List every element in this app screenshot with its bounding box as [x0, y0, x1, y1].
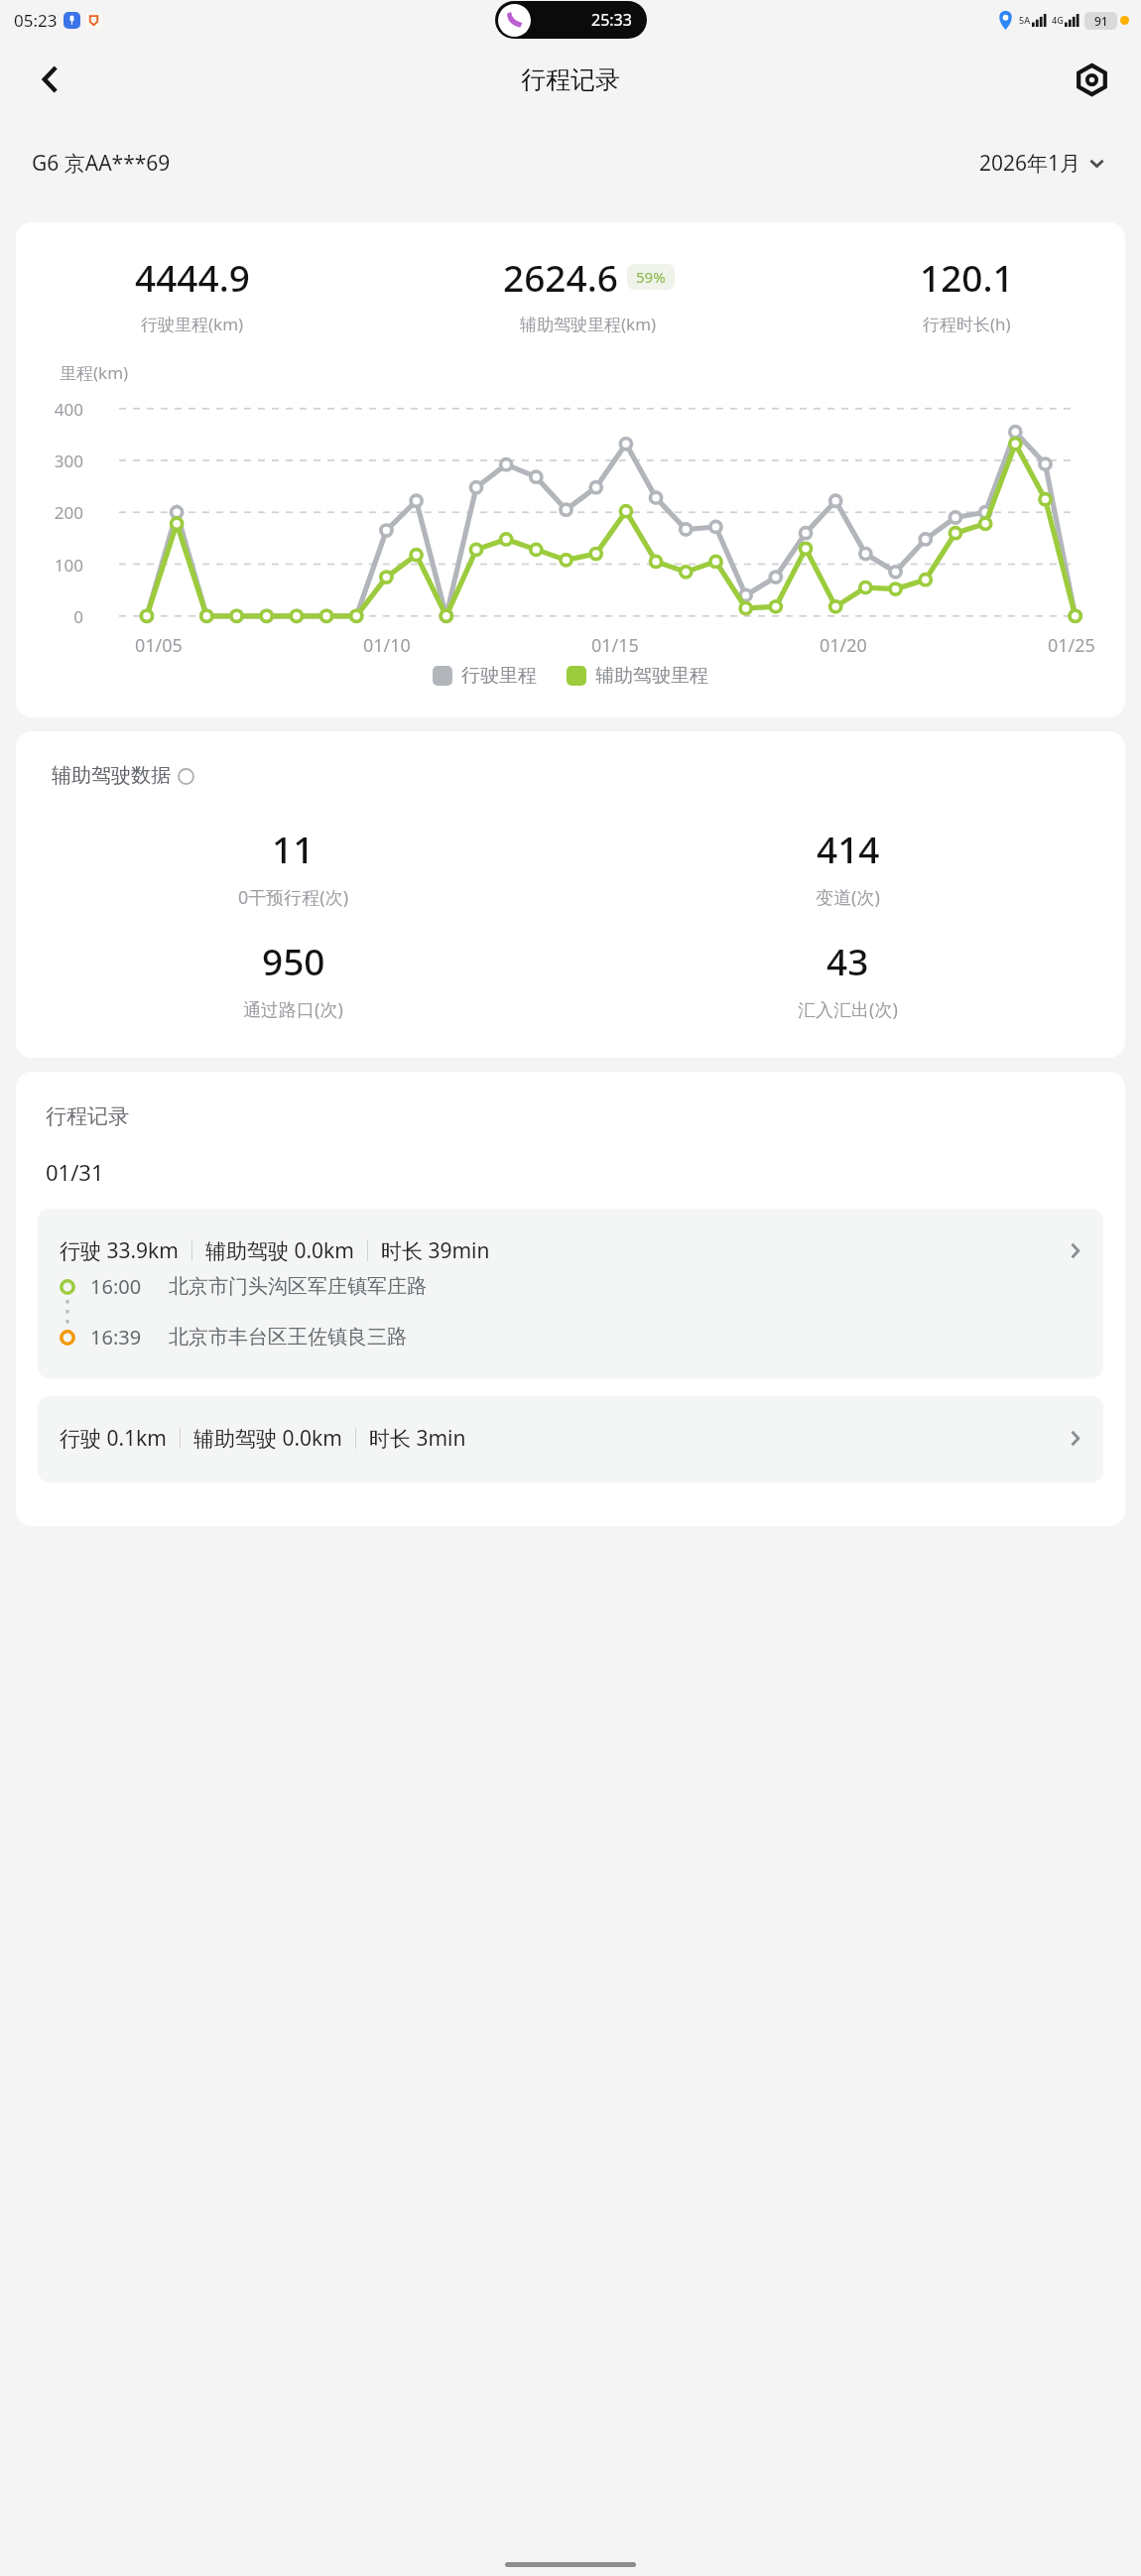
staticText: 时长 39min	[381, 1236, 490, 1265]
staticText: 05:23	[14, 9, 58, 32]
staticText: 行驶里程	[461, 664, 537, 688]
staticText: 辅助驾驶 0.0km	[205, 1236, 354, 1265]
staticText: 120.1	[920, 252, 1014, 302]
staticText: 59%	[636, 267, 666, 287]
staticText: 行驶 0.1km	[60, 1424, 167, 1453]
staticText: 里程(km)	[60, 361, 129, 384]
button[interactable]: 行驶 0.1km	[38, 1396, 1103, 1482]
staticText: 100	[36, 554, 83, 577]
button[interactable]: 行驶 33.9km	[38, 1209, 1103, 1378]
staticText: 辅助驾驶里程(km)	[520, 313, 657, 335]
staticText: 时长 3min	[369, 1424, 466, 1453]
staticText: 4444.9	[135, 252, 250, 302]
staticText: 行驶 33.9km	[60, 1236, 179, 1265]
staticText: 300	[36, 450, 83, 472]
staticText: 414	[817, 824, 880, 873]
staticText: 16:39	[90, 1324, 142, 1351]
staticText: 01/31	[46, 1157, 104, 1187]
staticText: 01/15	[591, 633, 639, 658]
staticText: 行程记录	[46, 1103, 129, 1129]
staticText: 01/20	[820, 633, 867, 658]
staticText: 01/05	[135, 633, 183, 658]
staticText: 行程时长(h)	[923, 313, 1011, 335]
staticText: 行驶里程(km)	[141, 313, 244, 335]
staticText: 01/10	[363, 633, 411, 658]
staticText: 25:33	[591, 9, 632, 31]
staticText: 2026年1月	[979, 149, 1081, 178]
staticText: G6 京AA***69	[32, 149, 171, 178]
button[interactable]: 帮助	[176, 766, 195, 786]
staticText: 0干预行程(次)	[238, 885, 349, 910]
staticText: 变道(次)	[816, 885, 880, 910]
staticText: 北京市丰台区王佐镇良三路	[169, 1325, 407, 1350]
staticText: 辅助驾驶数据	[52, 763, 171, 788]
staticText: 北京市门头沟区军庄镇军庄路	[169, 1274, 427, 1299]
staticText: 2624.6	[503, 252, 618, 302]
button[interactable]: Back	[24, 54, 75, 105]
staticText: 0	[36, 605, 83, 628]
staticText: 4G	[1052, 14, 1064, 26]
staticText: 01/25	[1048, 633, 1095, 658]
button[interactable]: 2026年1月	[975, 145, 1109, 182]
staticText: 200	[36, 501, 83, 524]
staticText: 43	[826, 936, 869, 985]
staticText: 辅助驾驶里程	[595, 664, 708, 688]
staticText: 行程记录	[521, 64, 620, 95]
button[interactable]: Settings	[1066, 54, 1117, 105]
staticText: 5A	[1019, 14, 1031, 26]
staticText: 16:00	[90, 1273, 142, 1300]
staticText: 91	[1094, 13, 1108, 29]
staticText: 950	[262, 936, 325, 985]
staticText: 汇入汇出(次)	[798, 997, 898, 1022]
staticText: 400	[36, 398, 83, 421]
staticText: 11	[272, 824, 315, 873]
staticText: 辅助驾驶 0.0km	[193, 1424, 342, 1453]
staticText: 通过路口(次)	[243, 997, 343, 1022]
